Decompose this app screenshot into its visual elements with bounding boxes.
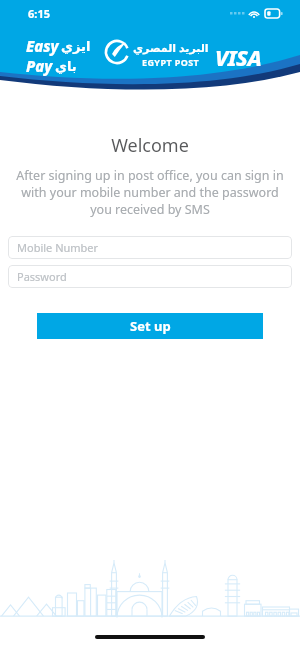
button[interactable]: Mobile Number	[8, 236, 292, 259]
staticText: باي	[55, 59, 77, 74]
staticText: After signing up in post office, you can…	[11, 167, 289, 218]
staticText: Password	[17, 269, 67, 284]
staticText: البريد المصري	[133, 40, 209, 55]
staticText: Mobile Number	[17, 240, 99, 255]
button[interactable]: Set up	[37, 313, 263, 339]
staticText: Welcome	[111, 133, 189, 158]
staticText: VISA	[215, 42, 262, 72]
staticText: Pay	[26, 56, 53, 76]
button[interactable]: Password	[8, 265, 292, 288]
staticText: 6:15	[28, 6, 50, 21]
staticText: Set up	[130, 317, 171, 335]
staticText: Easy	[26, 36, 59, 56]
staticText: ايزي	[61, 39, 91, 54]
staticText: EGYPT POST	[142, 56, 200, 68]
